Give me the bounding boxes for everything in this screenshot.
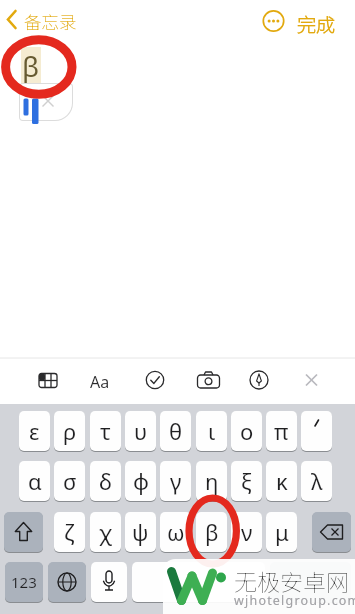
button[interactable]: ω <box>160 512 191 552</box>
staticText: χ <box>99 517 113 547</box>
button[interactable]: σ <box>54 461 85 501</box>
staticText: ψ <box>132 517 149 547</box>
button[interactable] <box>86 366 116 394</box>
button[interactable] <box>312 512 351 552</box>
button[interactable] <box>91 562 127 602</box>
staticText: Aa <box>90 371 110 393</box>
staticText: ρ <box>63 416 77 446</box>
button[interactable] <box>132 562 265 602</box>
button[interactable]: χ <box>90 512 121 552</box>
button[interactable]: 123 <box>5 562 43 602</box>
button[interactable]: λ <box>301 461 332 501</box>
staticText: 完成 <box>297 10 336 38</box>
button[interactable] <box>298 366 326 394</box>
staticText: λ <box>311 466 323 496</box>
staticText: β <box>205 517 219 547</box>
staticText: τ <box>100 416 111 446</box>
staticText: κ <box>276 466 288 496</box>
button[interactable]: υ <box>125 411 156 451</box>
staticText: 123 <box>11 572 37 592</box>
button[interactable]: ρ <box>54 411 85 451</box>
button[interactable]: δ <box>90 461 121 501</box>
button[interactable] <box>292 4 347 36</box>
staticText: φ <box>133 466 149 496</box>
staticText: γ <box>170 466 182 496</box>
button[interactable]: μ <box>266 512 297 552</box>
button[interactable] <box>258 6 289 37</box>
staticText: ι <box>208 416 216 446</box>
staticText: 无极安卓网 <box>234 564 349 597</box>
button[interactable] <box>194 366 224 394</box>
button[interactable] <box>245 366 273 394</box>
button[interactable]: ε <box>19 411 50 451</box>
staticText: ν <box>241 517 253 547</box>
staticText: ε <box>29 416 40 446</box>
button[interactable]: γ <box>160 461 191 501</box>
staticText: wjhotelgroup.com <box>234 592 355 609</box>
button[interactable] <box>270 562 351 602</box>
button[interactable] <box>0 4 90 36</box>
staticText: β <box>22 47 40 84</box>
button[interactable]: ο <box>231 411 262 451</box>
button[interactable]: π <box>266 411 297 451</box>
button[interactable] <box>301 411 332 451</box>
button[interactable]: ψ <box>125 512 156 552</box>
button[interactable]: φ <box>125 461 156 501</box>
button[interactable]: ζ <box>54 512 85 552</box>
staticText: ω <box>167 517 185 547</box>
staticText: ο <box>240 416 254 446</box>
button[interactable]: η <box>196 461 227 501</box>
button[interactable]: α <box>19 461 50 501</box>
staticText: ξ <box>241 466 252 496</box>
staticText: 备忘录 <box>24 9 77 34</box>
button[interactable]: κ <box>266 461 297 501</box>
staticText: ζ <box>64 517 75 547</box>
button[interactable]: β <box>196 512 227 552</box>
button[interactable] <box>141 366 169 394</box>
staticText: υ <box>134 416 148 446</box>
staticText: η <box>205 466 219 496</box>
staticText: α <box>28 466 42 496</box>
staticText: π <box>274 416 289 446</box>
staticText: σ <box>63 466 77 496</box>
button[interactable]: τ <box>90 411 121 451</box>
button[interactable] <box>4 512 43 552</box>
button[interactable]: ν <box>231 512 262 552</box>
staticText: μ <box>275 517 289 547</box>
staticText: θ <box>169 416 183 446</box>
button[interactable]: θ <box>160 411 191 451</box>
button[interactable] <box>48 562 86 602</box>
button[interactable]: ξ <box>231 461 262 501</box>
button[interactable] <box>34 366 62 394</box>
staticText: δ <box>99 466 112 496</box>
button[interactable]: ι <box>196 411 227 451</box>
